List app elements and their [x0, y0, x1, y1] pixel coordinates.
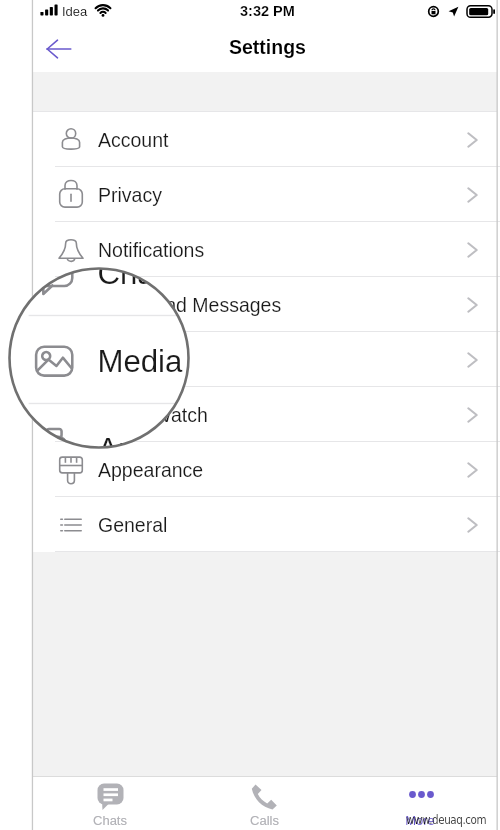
- staticText: Chats and Messages: [97, 256, 392, 291]
- button[interactable]: Media: [33, 332, 497, 387]
- staticText: www.deuaq.com: [406, 813, 487, 826]
- button[interactable]: Chats and Messages: [33, 277, 497, 332]
- staticText: Account: [97, 0, 211, 27]
- staticText: Notifications: [97, 168, 269, 203]
- button[interactable]: Privacy: [33, 167, 497, 222]
- button[interactable]: Account: [0, 0, 500, 52]
- staticText: 3:32 PM: [240, 3, 295, 19]
- staticText: Settings: [229, 36, 306, 58]
- staticText: Media: [97, 344, 184, 379]
- staticText: Notifications: [98, 239, 205, 261]
- button[interactable]: Calls: [187, 776, 342, 830]
- staticText: Idea: [62, 4, 88, 19]
- staticText: Apple Watch: [97, 432, 273, 467]
- staticText: Privacy: [97, 80, 200, 115]
- button[interactable]: Media: [0, 316, 500, 404]
- button[interactable]: Apple Watch: [0, 404, 500, 492]
- staticText: Privacy: [98, 184, 162, 206]
- staticText: Appearance: [97, 520, 267, 555]
- button[interactable]: Chats: [33, 776, 187, 830]
- button[interactable]: Back: [35, 24, 81, 70]
- staticText: Apple Watch: [98, 404, 208, 426]
- button[interactable]: More: [342, 776, 497, 830]
- staticText: Account: [98, 129, 169, 151]
- button[interactable]: Privacy: [0, 52, 500, 140]
- staticText: Chats: [93, 813, 127, 828]
- button[interactable]: Notifications: [0, 140, 500, 228]
- staticText: Chats and Messages: [98, 294, 282, 316]
- button[interactable]: General: [0, 580, 500, 668]
- button[interactable]: Notifications: [33, 222, 497, 277]
- staticText: General: [98, 514, 168, 536]
- staticText: Appearance: [98, 459, 204, 481]
- staticText: More: [405, 813, 435, 828]
- button[interactable]: Appearance: [0, 492, 500, 580]
- button[interactable]: General: [33, 497, 497, 552]
- button[interactable]: Account: [33, 112, 497, 167]
- staticText: Media: [98, 349, 152, 371]
- button[interactable]: Apple Watch: [33, 387, 497, 442]
- staticText: Calls: [250, 813, 279, 828]
- button[interactable]: Chats and Messages: [0, 228, 500, 316]
- button[interactable]: Appearance: [33, 442, 497, 497]
